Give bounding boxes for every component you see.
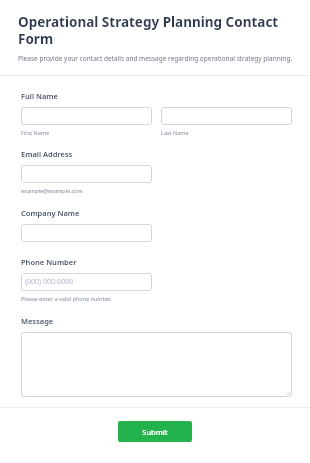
staticText: Operational Strategy Planning Contact Fo… bbox=[18, 13, 290, 48]
staticText: Please provide your contact details and … bbox=[18, 54, 293, 63]
staticText: example@example.com bbox=[21, 187, 83, 194]
staticText: Full Name bbox=[21, 91, 58, 101]
button[interactable]: (000) 000-0000 bbox=[21, 273, 152, 291]
staticText: Submit bbox=[142, 427, 168, 437]
button[interactable] bbox=[21, 332, 292, 397]
staticText: Email Address bbox=[21, 149, 73, 159]
staticText: First Name bbox=[21, 129, 50, 136]
staticText: Last Name bbox=[161, 129, 189, 136]
staticText: Phone Number bbox=[21, 257, 77, 267]
staticText: Company Name bbox=[21, 208, 80, 218]
staticText: (000) 000-0000 bbox=[25, 277, 74, 287]
button[interactable]: Submit bbox=[118, 421, 192, 442]
button[interactable] bbox=[21, 165, 152, 183]
staticText: Please enter a valid phone number. bbox=[21, 295, 112, 302]
button[interactable] bbox=[161, 107, 292, 125]
staticText: Message bbox=[21, 316, 54, 326]
button[interactable] bbox=[21, 107, 152, 125]
button[interactable] bbox=[21, 224, 152, 242]
